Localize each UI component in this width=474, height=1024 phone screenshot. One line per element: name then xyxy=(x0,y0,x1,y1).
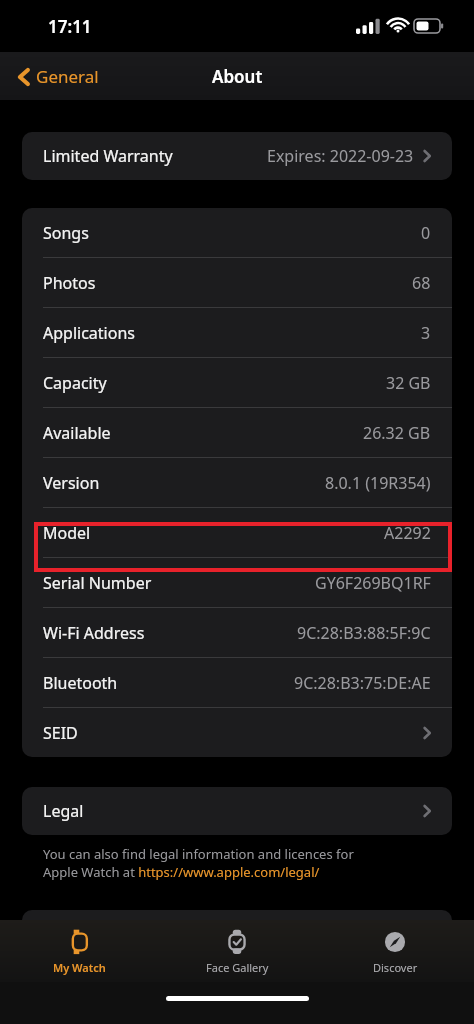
staticText: Limited Warranty xyxy=(43,145,173,167)
staticText: Legal xyxy=(43,800,84,822)
button[interactable]: Limited Warranty xyxy=(22,132,452,180)
staticText: Version xyxy=(43,472,100,494)
button[interactable]: Serial Number xyxy=(22,558,452,607)
staticText: 0 xyxy=(421,222,431,244)
staticText: 17:11 xyxy=(48,15,92,38)
staticText: 9C:28:B3:75:DE:AE xyxy=(294,672,431,694)
staticText: 68 xyxy=(412,272,431,294)
staticText: 26.32 GB xyxy=(363,422,431,444)
button[interactable]: Wi-Fi Address xyxy=(22,608,452,657)
button[interactable]: My Watch xyxy=(0,920,158,982)
staticText: Songs xyxy=(43,222,89,244)
staticText: 32 GB xyxy=(386,372,431,394)
staticText: Model xyxy=(43,522,91,544)
staticText: About xyxy=(212,65,263,88)
button[interactable]: General xyxy=(12,59,105,94)
staticText: 8.0.1 (19R354) xyxy=(325,472,431,494)
button[interactable]: Applications xyxy=(22,308,452,357)
button[interactable]: Discover xyxy=(316,920,474,982)
staticText: Available xyxy=(43,422,111,444)
staticText: Photos xyxy=(43,272,96,294)
staticText: General xyxy=(36,65,99,88)
button[interactable]: Available xyxy=(22,408,452,457)
staticText: Bluetooth xyxy=(43,672,118,694)
button[interactable]: SEID xyxy=(22,708,452,757)
staticText: You can also find legal information and … xyxy=(43,845,354,863)
staticText: My Watch xyxy=(53,960,106,975)
staticText: 3 xyxy=(421,322,431,344)
staticText: GY6F269BQ1RF xyxy=(315,572,431,594)
staticText: Face Gallery xyxy=(206,960,269,975)
button[interactable]: Songs xyxy=(22,208,452,257)
button[interactable]: Face Gallery xyxy=(158,920,316,982)
staticText: Apple Watch at https://www.apple.com/leg… xyxy=(43,863,320,881)
button[interactable]: Photos xyxy=(22,258,452,307)
button[interactable]: Bluetooth xyxy=(22,658,452,707)
staticText: Capacity xyxy=(43,372,107,394)
staticText: 9C:28:B3:88:5F:9C xyxy=(297,622,431,644)
button[interactable]: Version xyxy=(22,458,452,507)
staticText: Serial Number xyxy=(43,572,152,594)
button[interactable]: Capacity xyxy=(22,358,452,407)
staticText: Expires: 2022-09-23 xyxy=(267,145,414,167)
staticText: Applications xyxy=(43,322,135,344)
staticText: SEID xyxy=(43,722,78,744)
button[interactable]: Model xyxy=(22,508,452,557)
staticText: A2292 xyxy=(384,522,431,544)
staticText: Discover xyxy=(373,960,418,975)
button[interactable]: Legal xyxy=(22,787,452,835)
staticText: Wi-Fi Address xyxy=(43,622,145,644)
